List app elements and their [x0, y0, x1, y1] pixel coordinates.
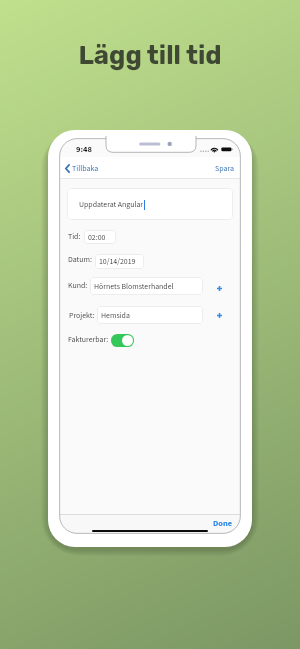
button[interactable]: Add — [212, 308, 226, 322]
button[interactable]: Hörnets Blomsterhandel — [90, 277, 203, 295]
staticText: Datum: — [68, 254, 92, 265]
staticText: Hemsida — [101, 310, 130, 321]
staticText: Uppdaterat Angular — [79, 199, 144, 210]
staticText: 9:48 — [76, 143, 92, 155]
staticText: 02:00 — [88, 232, 106, 243]
staticText: Tillbaka — [72, 163, 99, 174]
staticText: Hörnets Blomsterhandel — [94, 281, 174, 292]
button[interactable]: Spara — [209, 160, 240, 177]
button[interactable]: Tillbaka — [63, 160, 101, 177]
staticText: Projekt: — [69, 310, 95, 321]
button[interactable]: Hemsida — [97, 306, 203, 324]
button[interactable]: Add — [212, 281, 226, 295]
button[interactable]: 10/14/2019 — [95, 254, 144, 269]
button[interactable]: Fakturerbar — [111, 334, 134, 347]
staticText: Done — [213, 517, 233, 529]
staticText: Tid: — [68, 231, 81, 242]
button[interactable]: Uppdaterat Angular — [67, 188, 233, 220]
button[interactable]: Done — [206, 515, 240, 531]
staticText: 10/14/2019 — [99, 256, 136, 267]
staticText: Lägg till tid — [0, 40, 300, 71]
button[interactable]: 02:00 — [84, 230, 116, 244]
staticText: Fakturerbar: — [68, 334, 109, 345]
staticText: Spara — [215, 163, 234, 174]
staticText: Kund: — [68, 280, 88, 291]
